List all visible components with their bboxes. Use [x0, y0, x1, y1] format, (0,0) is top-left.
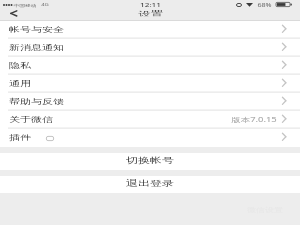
button[interactable]: 关于微信	[0, 111, 300, 129]
staticText: 关于微信	[9, 114, 53, 124]
staticText: 帮助与反馈	[9, 96, 64, 106]
button[interactable]: 切换帐号	[0, 153, 300, 170]
staticText: 12:11	[140, 1, 161, 7]
staticText: 68%	[257, 1, 272, 7]
staticText: 新消息通知	[9, 42, 64, 52]
button[interactable]: 帮助与反馈	[0, 93, 300, 111]
staticText: 中国移动	[13, 3, 37, 8]
button[interactable]: Back	[0, 9, 26, 20]
button[interactable]: 帐号与安全	[0, 21, 300, 39]
button[interactable]: 退出登录	[0, 176, 300, 193]
staticText: 4G	[41, 2, 49, 8]
staticText: 通用	[9, 78, 31, 88]
staticText: 切换帐号	[126, 155, 174, 165]
staticText: 设置	[138, 9, 163, 16]
staticText: 插件	[9, 132, 31, 142]
button[interactable]: 新消息通知	[0, 39, 300, 57]
staticText: 帐号与安全	[9, 24, 64, 34]
button[interactable]: 插件	[0, 129, 300, 147]
staticText: 版本7.0.15	[231, 115, 277, 124]
button[interactable]: 通用	[0, 75, 300, 93]
button[interactable]: 隐私	[0, 57, 300, 75]
staticText: 隐私	[9, 60, 31, 70]
staticText: 退出登录	[126, 178, 174, 188]
